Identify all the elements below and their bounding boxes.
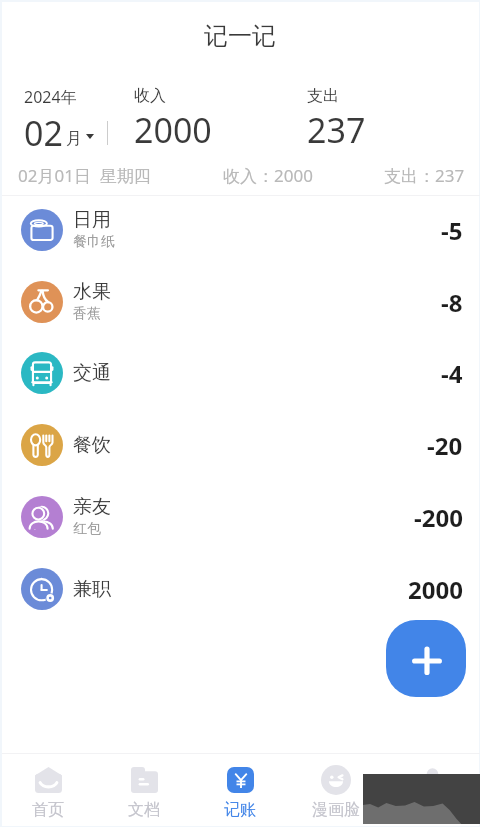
- button[interactable]: 我的: [384, 758, 480, 827]
- staticText: 2024年: [24, 86, 77, 108]
- staticText: -8: [441, 286, 463, 319]
- staticText: 2000: [408, 573, 463, 606]
- staticText: 餐饮: [73, 433, 111, 457]
- staticText: 红包: [73, 520, 101, 538]
- button[interactable]: 水果: [2, 266, 480, 338]
- button[interactable]: 日用: [2, 194, 480, 266]
- staticText: 首页: [32, 800, 64, 820]
- staticText: 2000: [134, 107, 212, 153]
- button[interactable]: 交通: [2, 337, 480, 409]
- staticText: 支出：237: [384, 164, 465, 187]
- staticText: 水果: [73, 280, 111, 304]
- staticText: 文档: [128, 800, 160, 820]
- staticText: -200: [414, 501, 463, 534]
- staticText: 记一记: [204, 21, 276, 51]
- staticText: 香蕉: [73, 305, 101, 323]
- button[interactable]: 文档: [96, 758, 192, 827]
- staticText: 月: [66, 129, 82, 149]
- staticText: 兼职: [73, 577, 111, 601]
- staticText: -5: [441, 214, 463, 247]
- staticText: 漫画脸: [312, 800, 360, 820]
- staticText: -20: [427, 429, 463, 462]
- button[interactable]: Add record: [386, 620, 466, 697]
- button[interactable]: 亲友: [2, 481, 480, 553]
- staticText: 收入: [134, 86, 166, 106]
- button[interactable]: 漫画脸: [288, 758, 384, 827]
- staticText: 237: [307, 107, 366, 153]
- staticText: 餐巾纸: [73, 233, 115, 251]
- staticText: 交通: [73, 361, 111, 385]
- button[interactable]: 记账: [192, 758, 288, 827]
- staticText: 亲友: [73, 495, 111, 519]
- staticText: 日用: [73, 208, 111, 232]
- button[interactable]: 兼职: [2, 553, 480, 625]
- button[interactable]: 首页: [0, 758, 96, 827]
- staticText: 我的: [416, 800, 448, 820]
- staticText: 02: [24, 110, 63, 156]
- staticText: 记账: [224, 800, 256, 820]
- staticText: 收入：2000: [223, 164, 313, 187]
- button[interactable]: 餐饮: [2, 409, 480, 481]
- staticText: -4: [441, 357, 463, 390]
- staticText: 02月01日 星期四: [18, 164, 151, 187]
- staticText: 支出: [307, 86, 339, 106]
